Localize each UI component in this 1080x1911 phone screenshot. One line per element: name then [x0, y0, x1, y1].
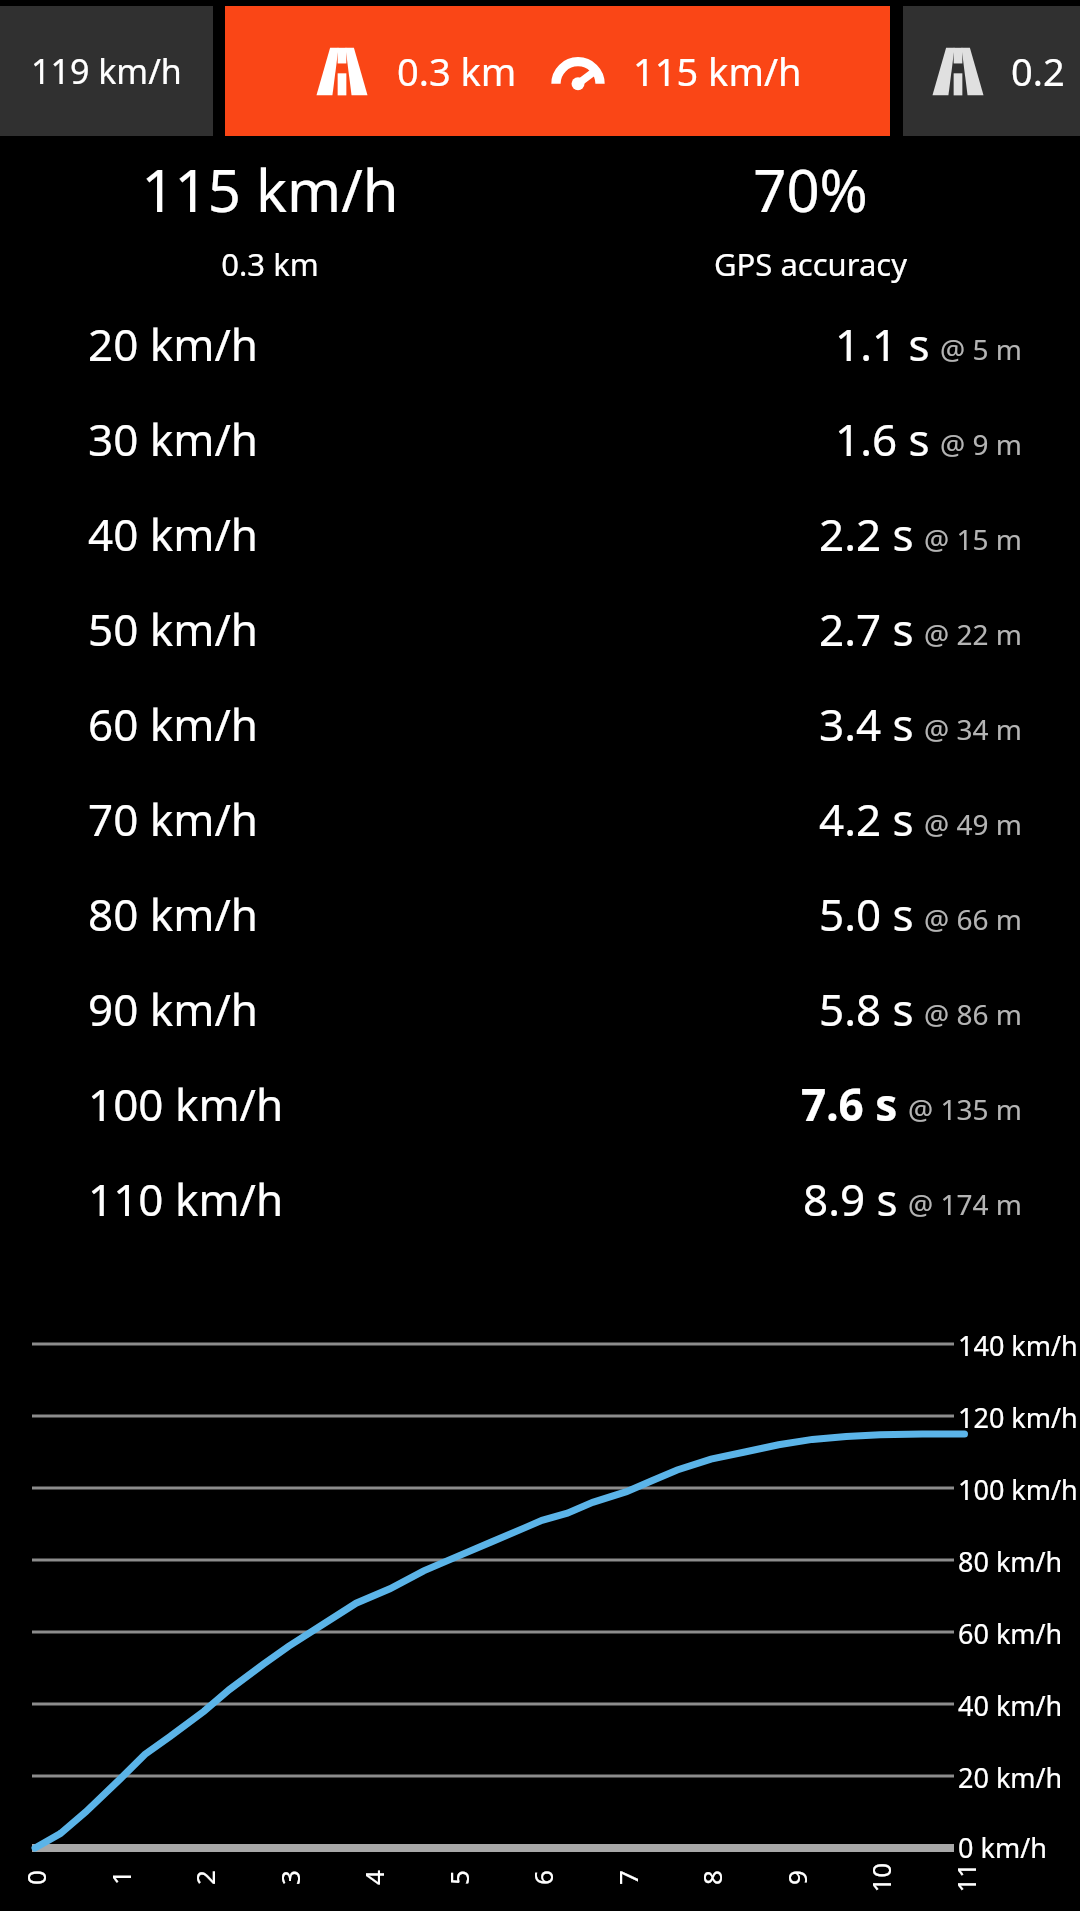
staticText: 110 km/h	[88, 1169, 284, 1229]
staticText: @ 174 m	[908, 1185, 1022, 1223]
button[interactable]: 110 km/h	[0, 1152, 1080, 1246]
staticText: 80 km/h	[958, 1543, 1063, 1580]
staticText: GPS accuracy	[714, 243, 907, 285]
staticText: 7	[610, 1870, 645, 1885]
staticText: 9	[779, 1870, 814, 1885]
staticText: 50 km/h	[88, 599, 258, 659]
staticText: 6	[525, 1870, 560, 1885]
staticText: 3.4 s	[819, 694, 914, 754]
staticText: 30 km/h	[88, 409, 258, 469]
staticText: 8	[694, 1870, 729, 1885]
button[interactable]: 119 km/h	[0, 6, 213, 136]
staticText: 90 km/h	[88, 979, 258, 1039]
staticText: 119 km/h	[31, 48, 182, 94]
button[interactable]: 90 km/h	[0, 962, 1080, 1056]
staticText: @ 9 m	[940, 425, 1022, 463]
staticText: @ 86 m	[924, 995, 1022, 1033]
staticText: 8.9 s	[803, 1169, 898, 1229]
staticText: @ 5 m	[940, 330, 1022, 368]
staticText: 4.2 s	[819, 789, 914, 849]
button[interactable]: 80 km/h	[0, 867, 1080, 961]
staticText: 0.3 km	[221, 243, 319, 285]
staticText: 3	[272, 1870, 307, 1885]
staticText: 2.7 s	[819, 599, 914, 659]
button[interactable]: Highway	[225, 6, 890, 136]
button[interactable]: 40 km/h	[0, 487, 1080, 581]
staticText: 0.3 km	[397, 45, 517, 97]
staticText: 2	[187, 1870, 222, 1885]
staticText: 20 km/h	[88, 314, 258, 374]
staticText: 5.8 s	[819, 979, 914, 1039]
staticText: 4	[356, 1870, 391, 1885]
staticText: 5	[441, 1870, 476, 1885]
button[interactable]: 60 km/h	[0, 677, 1080, 771]
staticText: 0.2	[1011, 45, 1065, 97]
staticText: 2.2 s	[819, 504, 914, 564]
button[interactable]: 20 km/h	[0, 297, 1080, 391]
staticText: 1.6 s	[835, 409, 930, 469]
staticText: 10	[862, 1862, 897, 1892]
staticText: 70%	[753, 150, 868, 229]
staticText: 70 km/h	[88, 789, 258, 849]
staticText: 80 km/h	[88, 884, 258, 944]
staticText: 0	[18, 1870, 53, 1885]
button[interactable]: 30 km/h	[0, 392, 1080, 486]
staticText: 11	[947, 1862, 982, 1892]
staticText: 140 km/h	[958, 1327, 1078, 1364]
staticText: 20 km/h	[958, 1759, 1063, 1796]
staticText: 60 km/h	[88, 694, 258, 754]
staticText: 0 km/h	[958, 1829, 1047, 1866]
staticText: 40 km/h	[88, 504, 258, 564]
staticText: 40 km/h	[958, 1687, 1063, 1724]
staticText: @ 66 m	[924, 900, 1022, 938]
staticText: 115 km/h	[141, 150, 399, 229]
staticText: @ 15 m	[924, 520, 1022, 558]
staticText: @ 49 m	[924, 805, 1022, 843]
button[interactable]: 50 km/h	[0, 582, 1080, 676]
staticText: @ 135 m	[908, 1090, 1022, 1128]
staticText: 60 km/h	[958, 1615, 1063, 1652]
other: Highway	[313, 42, 371, 100]
other: Speed gauge	[549, 42, 607, 100]
staticText: 1.1 s	[835, 314, 930, 374]
staticText: 7.6 s	[801, 1074, 898, 1134]
staticText: 120 km/h	[958, 1399, 1078, 1436]
button[interactable]: 70 km/h	[0, 772, 1080, 866]
staticText: 5.0 s	[819, 884, 914, 944]
staticText: 115 km/h	[633, 45, 802, 97]
staticText: @ 34 m	[924, 710, 1022, 748]
staticText: 100 km/h	[88, 1074, 284, 1134]
button[interactable]: 100 km/h	[0, 1057, 1080, 1151]
staticText: 100 km/h	[958, 1471, 1078, 1508]
staticText: @ 22 m	[924, 615, 1022, 653]
button[interactable]: Highway	[903, 6, 1080, 136]
staticText: 1	[103, 1870, 138, 1885]
other: Highway	[929, 42, 987, 100]
